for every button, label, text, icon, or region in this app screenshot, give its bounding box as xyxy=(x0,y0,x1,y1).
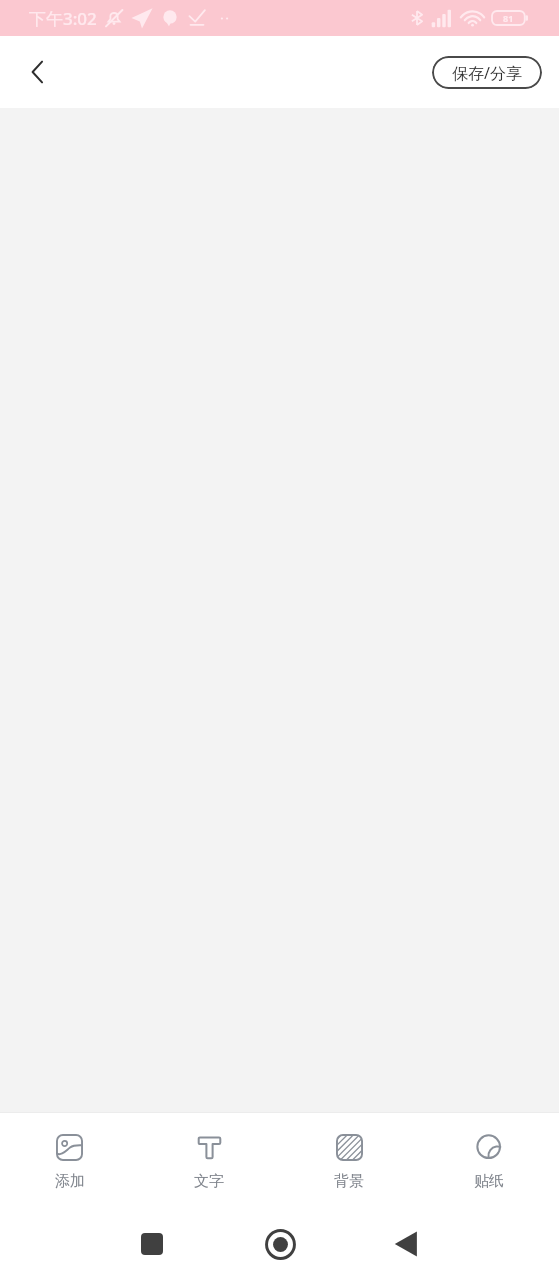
button[interactable]: Back xyxy=(379,1216,435,1272)
staticText: 保存/分享 xyxy=(452,62,522,84)
button[interactable]: 文字 xyxy=(139,1113,279,1212)
button[interactable]: Recents xyxy=(124,1216,180,1272)
staticText: 下午3:02 xyxy=(29,7,97,30)
staticText: 81 xyxy=(503,12,514,24)
button[interactable]: Home xyxy=(252,1216,308,1272)
button[interactable]: 贴纸 xyxy=(419,1113,559,1212)
staticText: 添加 xyxy=(55,1172,85,1191)
staticText: 文字 xyxy=(194,1172,224,1191)
button[interactable]: 添加 xyxy=(0,1113,139,1212)
staticText: 背景 xyxy=(334,1172,364,1191)
button[interactable]: 保存/分享 xyxy=(432,56,542,89)
button[interactable]: 背景 xyxy=(279,1113,419,1212)
button[interactable]: Back xyxy=(13,48,61,96)
staticText: 贴纸 xyxy=(474,1172,504,1191)
